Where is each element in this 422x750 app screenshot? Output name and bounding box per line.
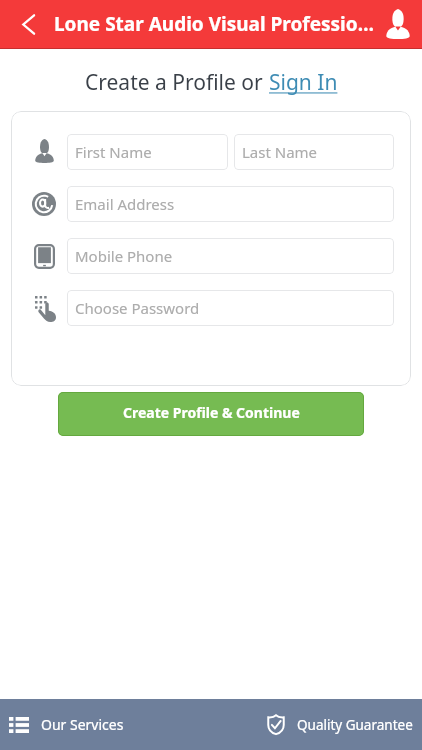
staticText: Sign In — [269, 68, 338, 97]
button[interactable]: Account — [380, 0, 422, 48]
button[interactable]: Back — [0, 0, 48, 48]
staticText: Quality Guarantee — [297, 716, 413, 734]
staticText: Lone Star Audio Visual Professio… — [54, 11, 374, 37]
staticText: Create a Profile or — [85, 68, 269, 97]
button[interactable]: Our Services — [0, 699, 211, 750]
button[interactable]: Mobile Phone — [67, 238, 394, 274]
staticText: Last Name — [242, 142, 318, 162]
button[interactable]: Quality Guarantee — [211, 699, 422, 750]
staticText: Email Address — [75, 194, 175, 214]
staticText: First Name — [75, 142, 152, 162]
staticText: Our Services — [41, 715, 124, 734]
button[interactable]: Email Address — [67, 186, 394, 222]
button[interactable]: Choose Password — [67, 290, 394, 326]
button[interactable]: Sign In — [269, 68, 338, 97]
button[interactable]: Create Profile & Continue — [58, 392, 364, 436]
staticText: Choose Password — [75, 298, 200, 318]
button[interactable]: Last Name — [234, 134, 394, 170]
staticText: Mobile Phone — [75, 246, 173, 266]
staticText: Create Profile & Continue — [123, 403, 300, 422]
button[interactable]: First Name — [67, 134, 228, 170]
